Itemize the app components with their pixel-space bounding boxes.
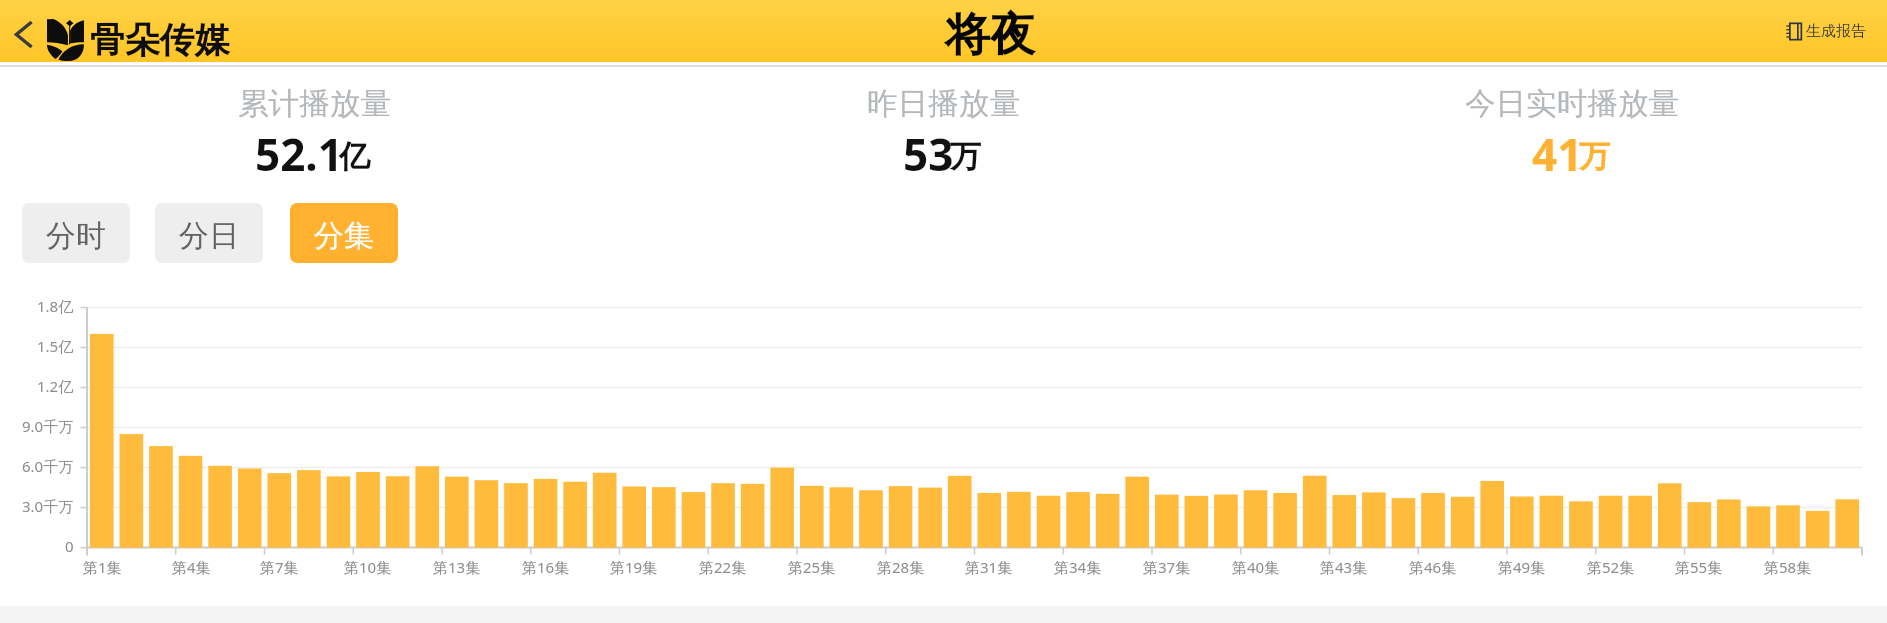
staticText: 累计播放量 [238, 85, 391, 124]
staticText: 昨日播放量 [867, 85, 1020, 124]
staticText: 生成报告 [1806, 22, 1866, 41]
staticText: 41 [1532, 124, 1583, 182]
staticText: 第25集 [788, 557, 836, 577]
staticText: 骨朵传媒 [90, 18, 230, 62]
staticText: 第16集 [522, 557, 570, 577]
staticText: 3.0千万 [22, 496, 74, 516]
button[interactable]: 骨朵传媒 [47, 8, 230, 70]
staticText: 第49集 [1498, 557, 1546, 577]
staticText: 第46集 [1409, 557, 1457, 577]
button[interactable]: 生成报告 [1786, 0, 1866, 62]
staticText: 第55集 [1675, 557, 1723, 577]
staticText: 第19集 [610, 557, 658, 577]
staticText: 万 [1579, 137, 1610, 176]
staticText: 0 [65, 536, 74, 556]
staticText: 52.1 [255, 124, 343, 182]
staticText: 6.0千万 [22, 456, 74, 476]
button[interactable]: 昨日播放量 [629, 82, 1258, 192]
staticText: 将夜 [945, 7, 1035, 64]
button[interactable]: 分日 [155, 203, 263, 263]
staticText: 今日实时播放量 [1465, 85, 1680, 124]
staticText: 分集 [314, 217, 374, 255]
staticText: 第22集 [699, 557, 747, 577]
staticText: 亿 [339, 137, 370, 176]
button[interactable]: 分时 [22, 203, 130, 263]
staticText: 第13集 [433, 557, 481, 577]
staticText: 第34集 [1054, 557, 1102, 577]
staticText: 第31集 [965, 557, 1013, 577]
staticText: 分时 [46, 217, 106, 255]
staticText: 第28集 [877, 557, 925, 577]
staticText: 53 [903, 124, 954, 182]
staticText: 分日 [179, 217, 239, 255]
staticText: 第58集 [1764, 557, 1812, 577]
staticText: 第40集 [1232, 557, 1280, 577]
staticText: 9.0千万 [22, 416, 74, 436]
button[interactable]: Back [5, 15, 43, 53]
staticText: 第7集 [260, 557, 299, 577]
staticText: 第43集 [1320, 557, 1368, 577]
button[interactable]: 累计播放量 [0, 82, 629, 192]
button[interactable]: 分集 [290, 203, 398, 263]
staticText: 第1集 [83, 557, 122, 577]
staticText: 第10集 [344, 557, 392, 577]
staticText: 1.2亿 [37, 376, 74, 396]
staticText: 万 [950, 137, 981, 176]
button[interactable]: 今日实时播放量 [1258, 82, 1887, 192]
staticText: 1.8亿 [37, 296, 74, 316]
staticText: 1.5亿 [37, 336, 74, 356]
staticText: 第4集 [172, 557, 211, 577]
staticText: 第52集 [1587, 557, 1635, 577]
staticText: 第37集 [1143, 557, 1191, 577]
